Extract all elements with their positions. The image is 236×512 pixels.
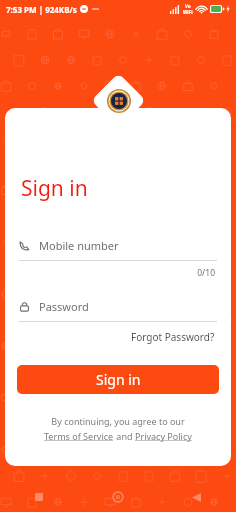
staticText: Password [39,299,89,314]
staticText: Vo [185,3,191,9]
staticText: Sign in [96,370,141,389]
other: Password [19,301,30,312]
staticText: 0/10 [5,267,215,279]
button[interactable]: Phone [19,235,217,255]
staticText: and [114,430,135,442]
button[interactable]: Forgot Password? [129,328,217,346]
button[interactable]: Password [19,296,217,316]
staticText: Sign in [21,174,88,203]
button[interactable]: Recents [0,482,78,512]
staticText: By continuing, you agree to our [5,415,231,427]
button[interactable]: Home [78,482,157,512]
button[interactable]: Back [157,482,236,512]
staticText: Mobile number [39,238,119,253]
staticText: WiFi [183,9,193,15]
staticText: 7:53 PM | 924KB/s [6,4,77,15]
button[interactable]: Terms of Service [44,430,114,442]
other: Phone [19,240,30,251]
button[interactable]: Privacy Policy [135,430,192,442]
button[interactable]: Sign in [17,365,219,394]
